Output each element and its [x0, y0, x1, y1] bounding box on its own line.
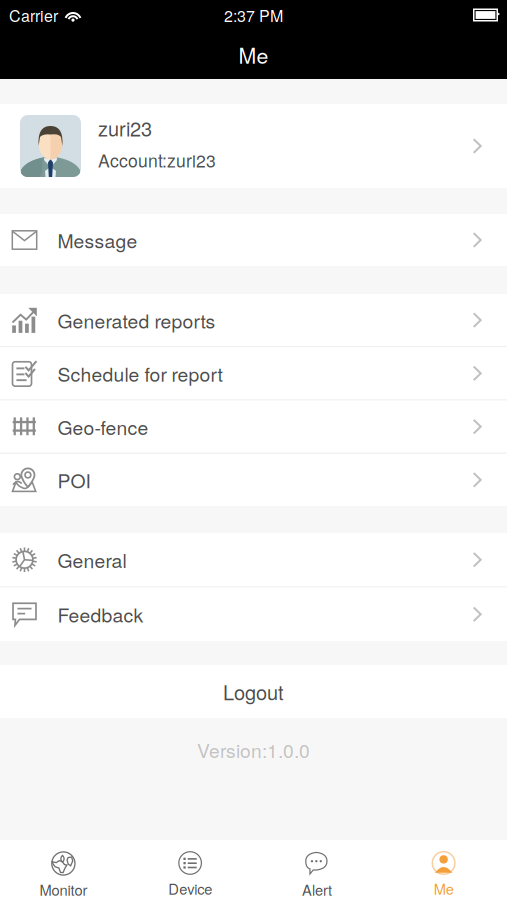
- button[interactable]: Generated reports: [0, 294, 507, 346]
- staticText: Version:1.0.0: [197, 736, 310, 763]
- button[interactable]: Device: [127, 840, 254, 900]
- button[interactable]: Feedback: [0, 587, 507, 641]
- staticText: Logout: [223, 677, 284, 706]
- staticText: POI: [57, 466, 90, 494]
- button[interactable]: Geo-fence: [0, 400, 507, 453]
- button[interactable]: General: [0, 533, 507, 586]
- staticText: Message: [57, 226, 137, 254]
- staticText: Alert: [302, 879, 332, 900]
- button[interactable]: Message: [0, 214, 507, 266]
- staticText: Device: [168, 878, 212, 899]
- button[interactable]: Schedule for report: [0, 347, 507, 399]
- staticText: Schedule for report: [57, 359, 222, 387]
- button[interactable]: zuri23: [0, 104, 507, 188]
- staticText: Feedback: [57, 600, 143, 628]
- staticText: Monitor: [39, 879, 87, 900]
- staticText: 2:37 PM: [224, 3, 283, 26]
- button[interactable]: Alert: [253, 840, 380, 900]
- staticText: Account:zuri23: [98, 147, 216, 172]
- button[interactable]: Monitor: [0, 840, 127, 900]
- staticText: Me: [238, 39, 268, 70]
- staticText: Generated reports: [57, 306, 215, 334]
- staticText: General: [57, 546, 126, 574]
- button[interactable]: Logout: [0, 665, 507, 718]
- staticText: Carrier: [9, 3, 58, 26]
- button[interactable]: POI: [0, 454, 507, 506]
- staticText: Me: [434, 878, 454, 899]
- staticText: zuri23: [98, 114, 152, 142]
- staticText: Geo-fence: [57, 413, 148, 440]
- button[interactable]: Me: [380, 840, 507, 900]
